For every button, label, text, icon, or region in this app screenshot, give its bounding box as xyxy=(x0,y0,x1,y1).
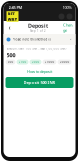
button[interactable]: Change xyxy=(62,21,73,33)
button[interactable]: How to deposit xyxy=(3,66,75,77)
staticText: ‹ xyxy=(8,23,10,32)
staticText: 100% xyxy=(62,5,71,10)
staticText: BET xyxy=(7,11,14,16)
staticText: 500 xyxy=(6,51,15,59)
staticText: +1000 xyxy=(44,60,54,64)
staticText: How to deposit xyxy=(27,69,52,74)
button[interactable]: Account xyxy=(66,13,72,19)
staticText: 500 xyxy=(7,60,13,64)
staticText: ✕ xyxy=(69,38,71,41)
staticText: 2:45 PM xyxy=(8,5,22,10)
staticText: +500 xyxy=(31,60,39,64)
staticText: Deposit 500 INR xyxy=(23,80,55,85)
staticText: Deposit xyxy=(28,22,48,29)
button[interactable]: 500 xyxy=(5,59,15,64)
button[interactable]: +500 xyxy=(29,59,41,64)
button[interactable]: Back xyxy=(5,21,13,33)
button[interactable]: +1000 xyxy=(42,59,56,64)
staticText: Step 1 of 2 xyxy=(30,29,46,33)
button[interactable]: Deposit 500 INR xyxy=(5,77,73,88)
staticText: +100 xyxy=(18,60,26,64)
button[interactable]: +5000 xyxy=(57,59,71,64)
staticText: WAY xyxy=(7,16,17,22)
button[interactable]: Dismiss xyxy=(68,37,72,41)
staticText: +5000 xyxy=(59,60,69,64)
staticText: Amount (Min 100 INR - Max 1,00,000 INR) xyxy=(6,47,66,50)
staticText: Change xyxy=(63,22,73,33)
staticText: Please note this method is xyxy=(12,38,50,41)
button[interactable]: Notifications xyxy=(58,13,64,19)
button[interactable]: +100 xyxy=(16,59,28,64)
